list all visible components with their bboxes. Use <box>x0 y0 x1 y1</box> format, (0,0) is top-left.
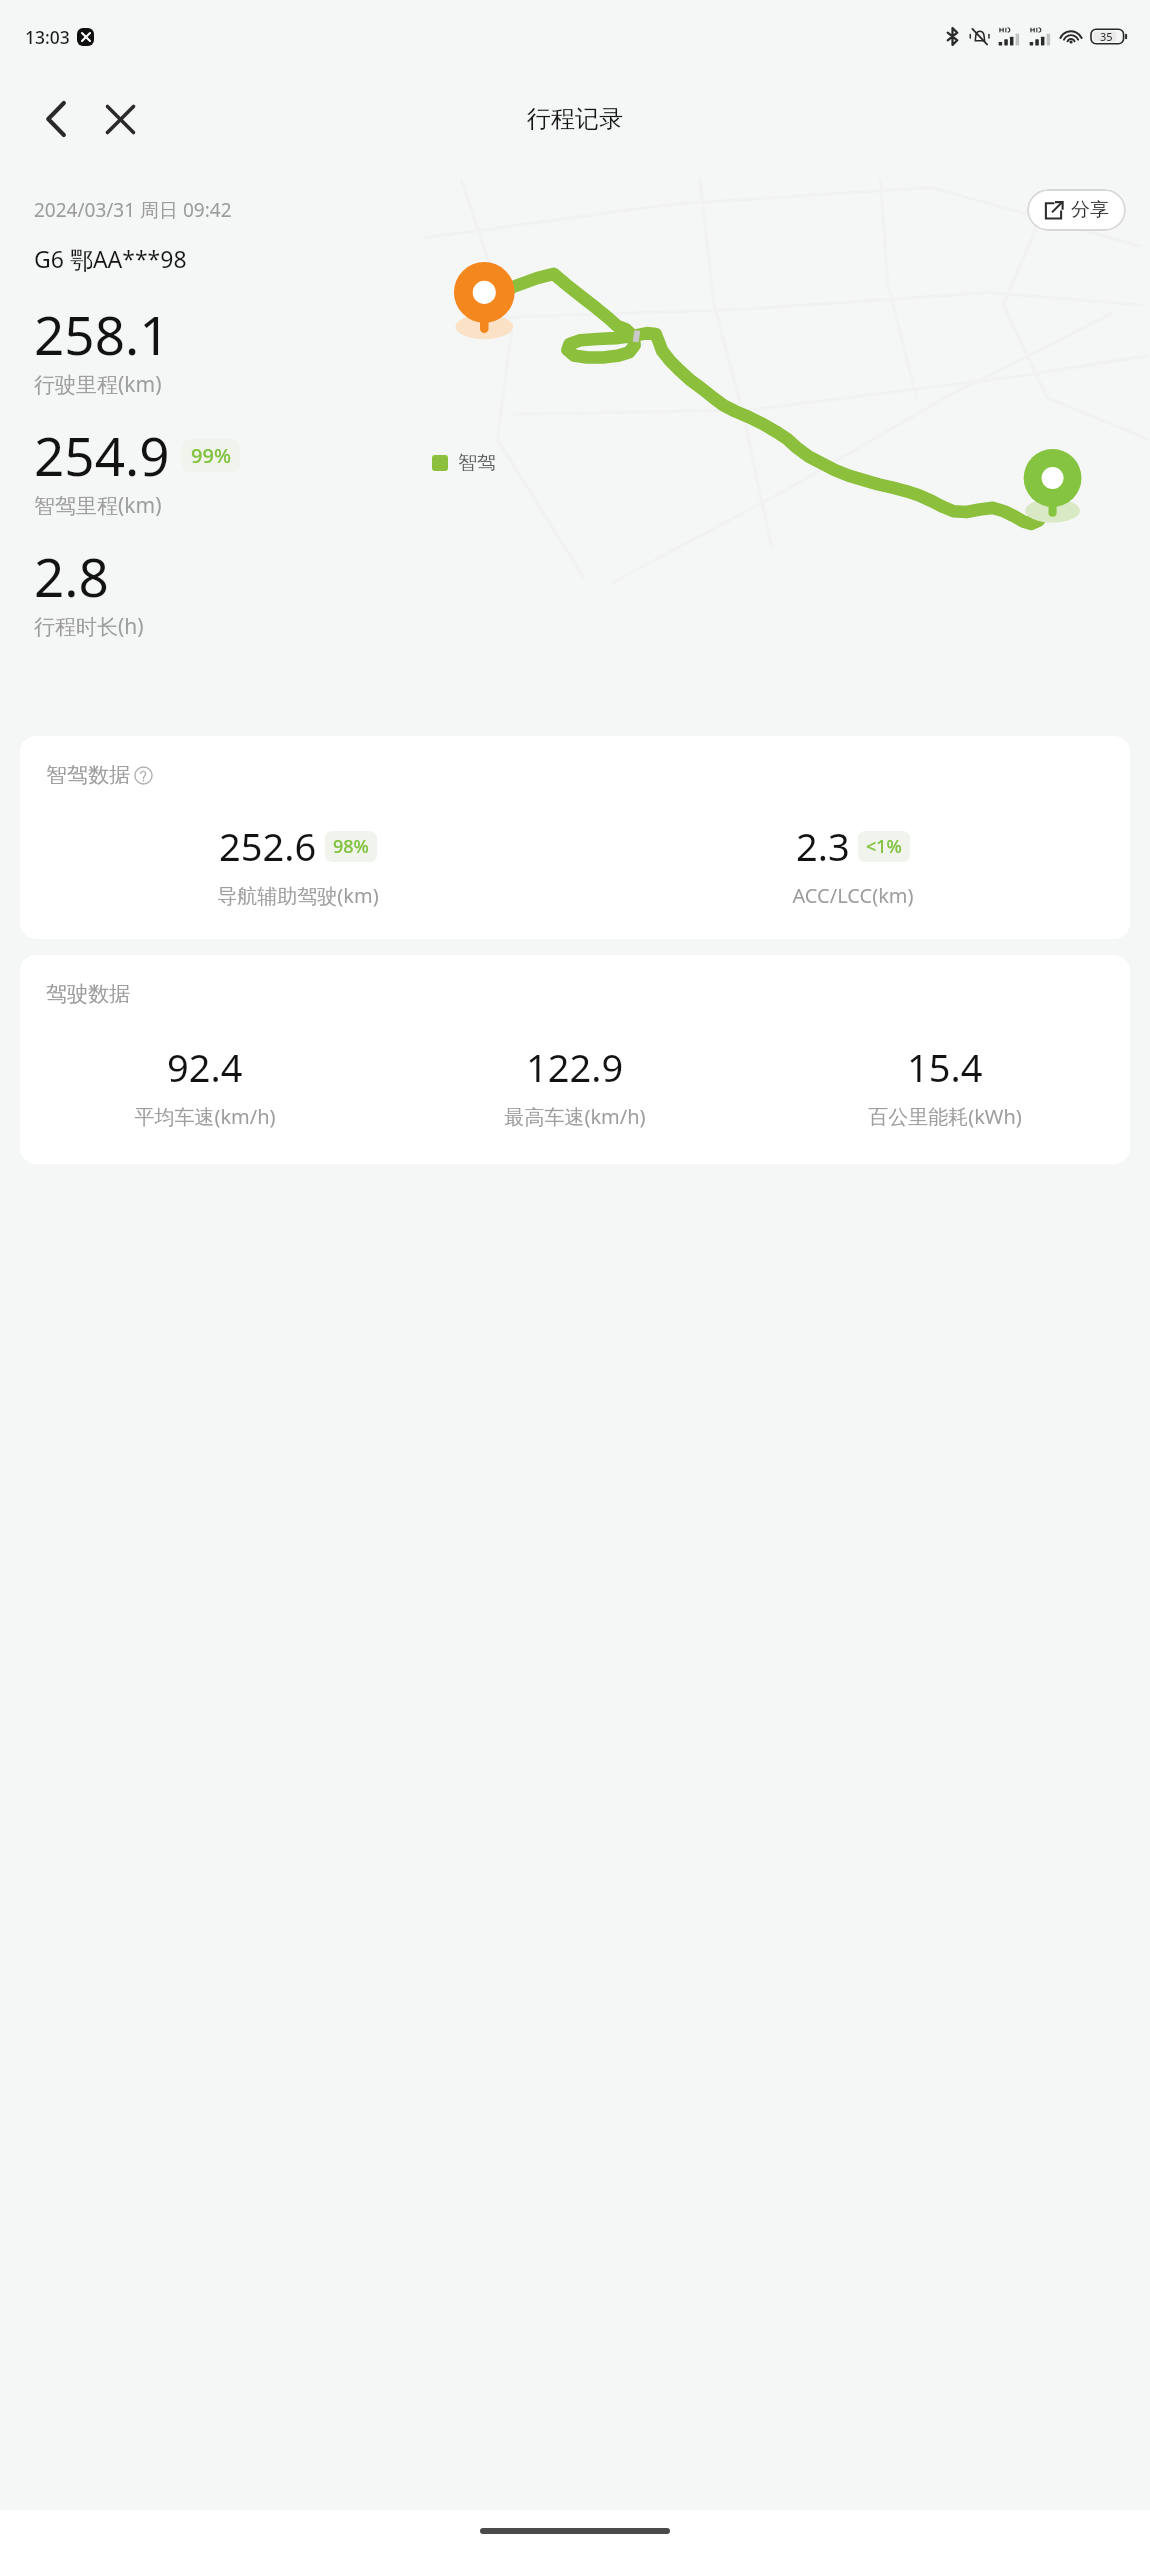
staticText: 98% <box>333 834 369 859</box>
staticText: 智驾里程(km) <box>34 491 162 520</box>
staticText: 35 <box>1100 29 1113 44</box>
button[interactable]: 驾驶数据 <box>20 955 1130 1164</box>
staticText: 百公里能耗(kWh) <box>868 1103 1022 1130</box>
staticText: 最高车速(km/h) <box>504 1103 646 1130</box>
staticText: 99% <box>191 442 231 469</box>
staticText: 13:03 <box>25 25 70 49</box>
staticText: <1% <box>866 834 902 859</box>
staticText: 252.6 <box>219 820 317 872</box>
staticText: 15.4 <box>907 1041 983 1093</box>
staticText: 2.8 <box>34 540 109 612</box>
button[interactable]: 分享 <box>1027 189 1126 231</box>
staticText: 92.4 <box>167 1041 243 1093</box>
button[interactable]: Close <box>92 91 148 147</box>
staticText: 驾驶数据 <box>46 981 130 1007</box>
button[interactable]: 智驾数据 <box>20 736 1130 939</box>
staticText: 2024/03/31 周日 09:42 <box>34 197 232 223</box>
staticText: 导航辅助驾驶(km) <box>217 882 379 909</box>
staticText: 平均车速(km/h) <box>134 1103 276 1130</box>
staticText: 行程记录 <box>527 104 623 134</box>
button[interactable]: Back <box>28 91 84 147</box>
staticText: ACC/LCC(km) <box>792 882 914 909</box>
staticText: 智驾数据 <box>46 762 130 788</box>
staticText: 行驶里程(km) <box>34 370 162 399</box>
staticText: 258.1 <box>34 298 170 370</box>
staticText: 122.9 <box>526 1041 624 1093</box>
staticText: 智驾 <box>458 451 496 475</box>
staticText: G6 鄂AA***98 <box>34 243 187 274</box>
staticText: 行程时长(h) <box>34 612 144 641</box>
staticText: 254.9 <box>34 419 170 491</box>
staticText: 2.3 <box>796 820 850 872</box>
staticText: 分享 <box>1071 198 1109 222</box>
